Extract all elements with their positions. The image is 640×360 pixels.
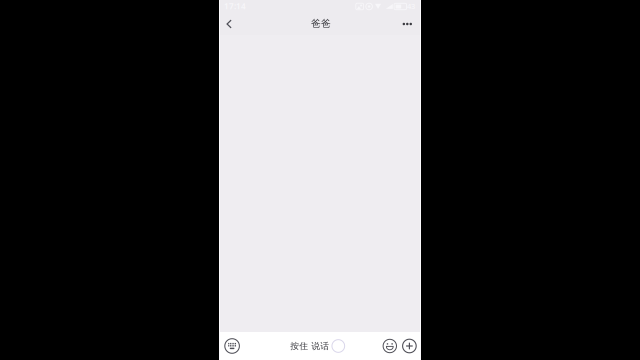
button[interactable]: Back bbox=[220, 13, 241, 35]
staticText: 17:14 bbox=[224, 1, 246, 12]
staticText: 按住 说话 bbox=[290, 340, 329, 352]
button[interactable]: More options bbox=[402, 332, 416, 360]
staticText: 爸爸 bbox=[311, 17, 331, 30]
button[interactable]: Keyboard bbox=[220, 332, 244, 360]
staticText: 43 bbox=[407, 1, 415, 11]
button[interactable]: Emoji bbox=[383, 332, 397, 360]
button[interactable]: 按住 说话 bbox=[290, 332, 345, 360]
button[interactable]: More bbox=[397, 13, 418, 35]
